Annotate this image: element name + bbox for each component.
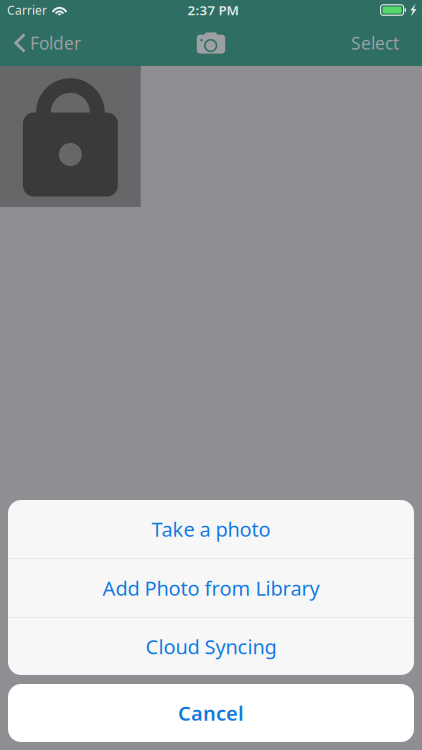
button[interactable]: Add Photo from Library bbox=[8, 559, 414, 617]
staticText: Cancel bbox=[178, 700, 244, 726]
staticText: Carrier bbox=[7, 2, 47, 18]
staticText: Add Photo from Library bbox=[102, 575, 319, 601]
staticText: Select bbox=[351, 31, 399, 54]
staticText: Cloud Syncing bbox=[145, 633, 276, 660]
staticText: Folder bbox=[30, 31, 81, 54]
button[interactable]: Take a photo bbox=[8, 500, 414, 558]
staticText: 2:37 PM bbox=[187, 1, 238, 19]
button[interactable]: Folder bbox=[2, 21, 93, 65]
button[interactable]: Cloud Syncing bbox=[8, 618, 414, 675]
staticText: Take a photo bbox=[151, 516, 270, 542]
button[interactable]: Camera bbox=[183, 21, 239, 65]
button[interactable]: Select bbox=[335, 21, 420, 65]
button[interactable]: Locked photo bbox=[0, 66, 141, 207]
button[interactable]: Cancel bbox=[8, 684, 414, 742]
